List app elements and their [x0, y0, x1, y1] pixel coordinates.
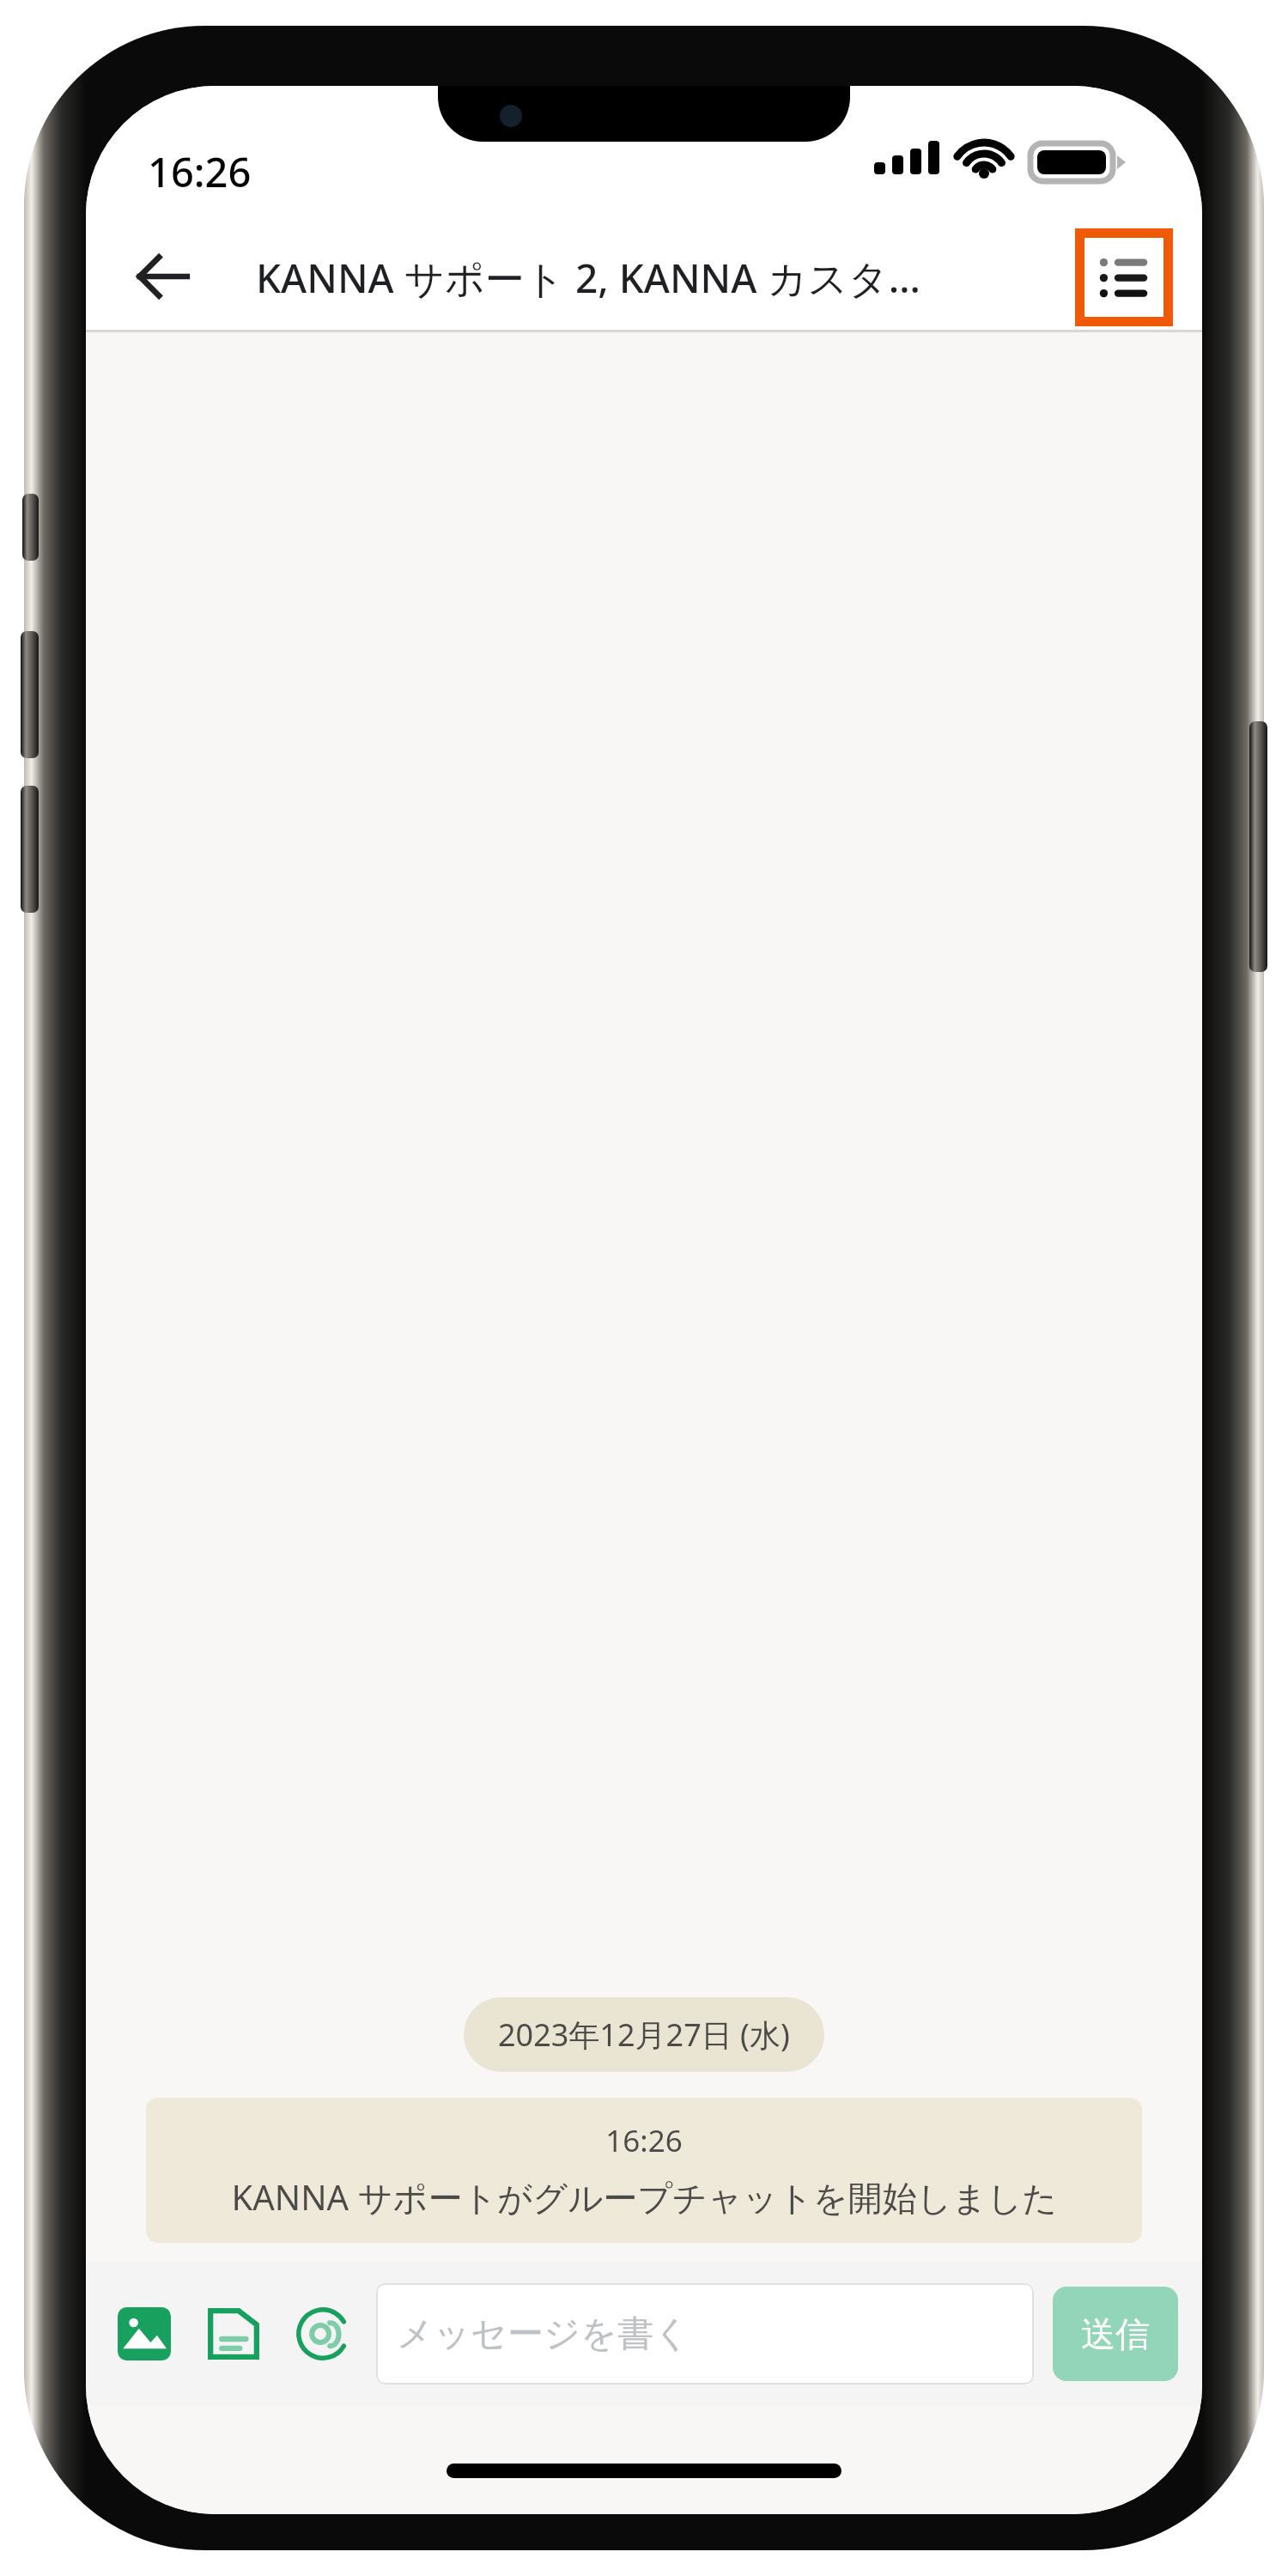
staticText: 16:26 — [605, 2120, 683, 2161]
staticText: メッセージを書く — [397, 2312, 690, 2357]
button[interactable]: 16:26 — [146, 2098, 1142, 2243]
button[interactable]: 2023年12月27日 (水) — [464, 1997, 824, 2072]
staticText: KANNA サポート 2, KANNA カスタ… — [256, 251, 920, 305]
button[interactable]: Menu — [1084, 238, 1163, 317]
button[interactable]: Back — [115, 229, 210, 324]
staticText: 2023年12月27日 (水) — [498, 2014, 790, 2056]
button[interactable]: Attach file — [189, 2289, 278, 2379]
button[interactable]: Attach image — [100, 2289, 189, 2379]
button[interactable]: メッセージを書く — [376, 2283, 1034, 2385]
staticText: KANNA サポートがグループチャットを開始しました — [231, 2173, 1058, 2221]
staticText: 16:26 — [148, 144, 252, 199]
button[interactable]: Mention — [278, 2289, 368, 2379]
staticText: 送信 — [1081, 2312, 1150, 2355]
button[interactable]: 送信 — [1053, 2287, 1178, 2381]
